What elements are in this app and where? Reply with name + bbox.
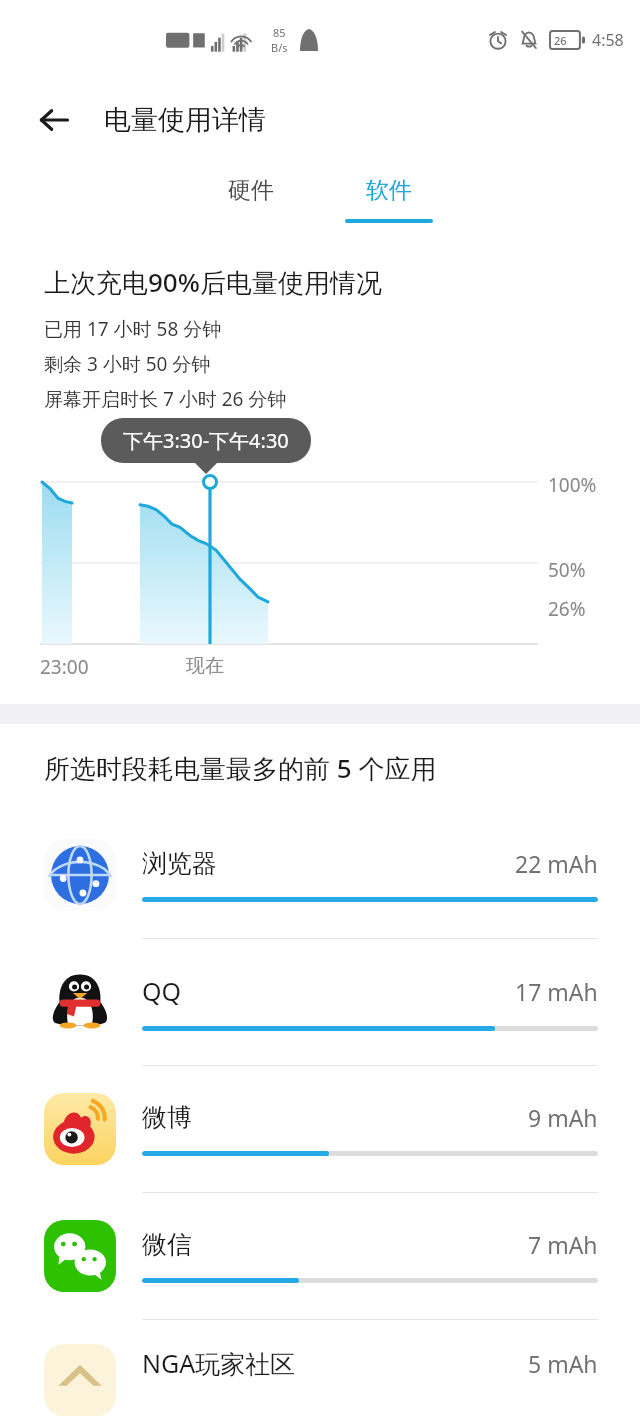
staticText: 9 mAh (528, 1102, 598, 1133)
staticText: 所选时段耗电量最多的前 5 个应用 (44, 750, 437, 786)
button[interactable]: 微信 (0, 1193, 640, 1320)
staticText: 100% (548, 472, 597, 498)
button[interactable]: 微博 (0, 1066, 640, 1193)
staticText: 微信 (142, 1229, 192, 1260)
staticText: 23:00 (40, 654, 89, 680)
staticText: 屏幕开启时长 7 小时 26 分钟 (44, 386, 287, 412)
staticText: 22 mAh (515, 848, 598, 879)
staticText: NGA玩家社区 (142, 1346, 296, 1380)
staticText: 50% (548, 557, 586, 583)
staticText: 上次充电90%后电量使用情况 (44, 264, 382, 300)
staticText: 5 mAh (528, 1348, 598, 1379)
staticText: 硬件 (228, 176, 274, 205)
button[interactable]: 软件 (339, 160, 439, 238)
button[interactable]: 浏览器 (0, 812, 640, 939)
button[interactable]: 返回 (28, 94, 80, 146)
staticText: 浏览器 (142, 848, 217, 879)
staticText: 软件 (366, 176, 412, 205)
staticText: 4:58 (592, 29, 624, 51)
staticText: 现在 (186, 654, 224, 678)
staticText: 26% (548, 596, 586, 622)
staticText: 电量使用详情 (104, 103, 266, 137)
staticText: QQ (142, 974, 182, 1008)
button[interactable]: NGA玩家社区 (0, 1320, 640, 1422)
staticText: 85 (273, 25, 286, 40)
staticText: 26 (554, 33, 567, 48)
staticText: 剩余 3 小时 50 分钟 (44, 351, 211, 377)
staticText: 17 mAh (515, 976, 598, 1007)
staticText: B/s (271, 40, 288, 55)
button[interactable]: QQ (0, 939, 640, 1066)
button[interactable]: 硬件 (201, 160, 301, 238)
staticText: 已用 17 小时 58 分钟 (44, 316, 222, 342)
staticText: 7 mAh (528, 1229, 598, 1260)
staticText: 下午3:30-下午4:30 (123, 427, 289, 454)
staticText: 微博 (142, 1102, 192, 1133)
